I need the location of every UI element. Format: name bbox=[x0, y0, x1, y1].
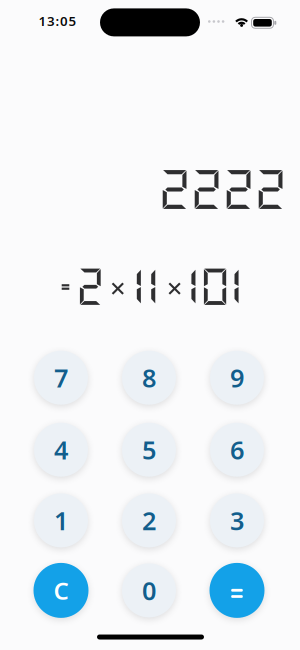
button[interactable]: 0 bbox=[122, 563, 176, 617]
button[interactable]: 8 bbox=[122, 351, 176, 405]
staticText: 4 bbox=[54, 433, 68, 466]
staticText: 6 bbox=[230, 433, 244, 466]
staticText: 3 bbox=[230, 504, 244, 537]
staticText: 8 bbox=[142, 361, 156, 394]
staticText: 0 bbox=[142, 574, 156, 607]
staticText: 1 bbox=[54, 504, 68, 537]
staticText: 13:05 bbox=[38, 12, 76, 30]
button[interactable]: 3 bbox=[210, 493, 264, 547]
staticText: 9 bbox=[230, 361, 244, 394]
button[interactable]: 2 bbox=[122, 493, 176, 547]
button[interactable]: C bbox=[33, 563, 88, 618]
button[interactable]: 5 bbox=[122, 423, 176, 477]
button[interactable]: 4 bbox=[34, 423, 88, 477]
button[interactable]: 6 bbox=[210, 423, 264, 477]
button[interactable]: 1 bbox=[34, 493, 88, 547]
staticText: 2 bbox=[142, 504, 156, 537]
button[interactable]: Equals bbox=[209, 563, 264, 618]
staticText: 7 bbox=[54, 361, 68, 394]
staticText: C bbox=[53, 574, 68, 606]
staticText: 5 bbox=[142, 433, 156, 466]
button[interactable]: 7 bbox=[34, 351, 88, 405]
button[interactable]: 9 bbox=[210, 351, 264, 405]
